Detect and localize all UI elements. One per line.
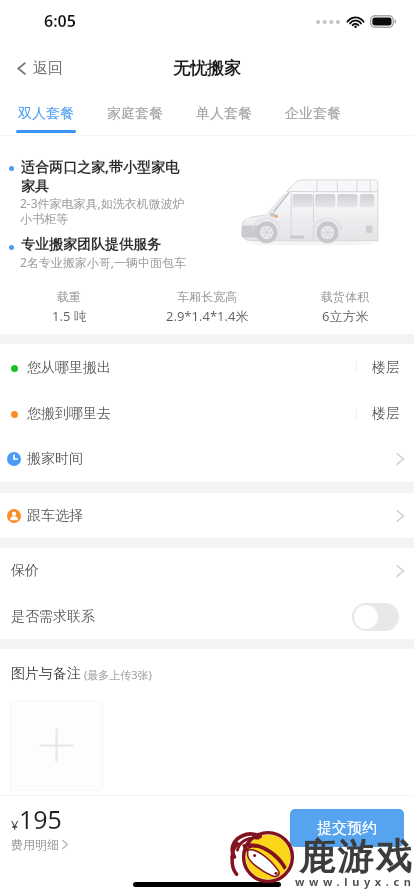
staticText: 楼层 bbox=[372, 359, 400, 377]
other: Open bbox=[396, 565, 404, 577]
staticText: 车厢长宽高 bbox=[177, 289, 237, 304]
staticText: 适合两口之家,带小型家电 家具 bbox=[21, 157, 179, 195]
staticText: 楼层 bbox=[372, 405, 400, 423]
staticText: 专业搬家团队提供服务 bbox=[21, 236, 161, 254]
button[interactable]: 双人套餐 bbox=[1, 92, 90, 135]
staticText: 载货体积 bbox=[321, 289, 369, 304]
staticText: 载重 bbox=[57, 289, 81, 304]
staticText: 2名专业搬家小哥,一辆中面包车 bbox=[20, 254, 210, 270]
button[interactable]: 是否需求联系 bbox=[0, 594, 414, 639]
staticText: 195 bbox=[19, 802, 62, 836]
button[interactable]: 返回 bbox=[0, 44, 73, 92]
staticText: 家庭套餐 bbox=[107, 105, 163, 123]
button[interactable]: 单人套餐 bbox=[179, 92, 268, 135]
other: Open bbox=[396, 510, 404, 522]
staticText: 单人套餐 bbox=[196, 105, 252, 123]
staticText: 返回 bbox=[33, 59, 63, 78]
staticText: 搬家时间 bbox=[27, 450, 83, 468]
staticText: 鹿游戏 bbox=[299, 834, 414, 879]
staticText: (最多上传3张) bbox=[84, 667, 152, 682]
staticText: 您搬到哪里去 bbox=[27, 405, 111, 423]
staticText: 无忧搬家 bbox=[173, 58, 241, 79]
button[interactable]: 企业套餐 bbox=[268, 92, 357, 135]
staticText: 提交预约 bbox=[317, 819, 377, 838]
staticText: 6:05 bbox=[44, 10, 76, 32]
staticText: 保价 bbox=[11, 562, 39, 580]
staticText: 6立方米 bbox=[322, 307, 369, 325]
staticText: 图片与备注 bbox=[11, 665, 81, 683]
staticText: 费用明细 bbox=[11, 837, 59, 852]
button[interactable]: 搬家时间 bbox=[0, 436, 414, 482]
button[interactable]: 您从哪里搬出 bbox=[0, 344, 414, 391]
staticText: www.luyx.cn bbox=[295, 874, 414, 889]
button[interactable]: 保价 bbox=[0, 548, 414, 594]
staticText: 2-3件家电家具,如洗衣机微波炉 小书柜等 bbox=[20, 195, 185, 227]
button[interactable]: 费用明细 bbox=[11, 837, 68, 852]
button[interactable]: 您搬到哪里去 bbox=[0, 391, 414, 436]
staticText: 是否需求联系 bbox=[11, 608, 95, 626]
button[interactable]: 家庭套餐 bbox=[90, 92, 179, 135]
staticText: 企业套餐 bbox=[285, 105, 341, 123]
other: Open bbox=[396, 453, 404, 465]
button[interactable]: 提交预约 bbox=[290, 809, 404, 847]
staticText: 2.9*1.4*1.4米 bbox=[166, 307, 249, 325]
staticText: 您从哪里搬出 bbox=[27, 359, 111, 377]
staticText: ¥ bbox=[11, 816, 19, 834]
button[interactable]: 跟车选择 bbox=[0, 493, 414, 538]
staticText: 双人套餐 bbox=[18, 105, 74, 123]
staticText: 1.5 吨 bbox=[52, 307, 87, 325]
staticText: 跟车选择 bbox=[27, 507, 83, 525]
